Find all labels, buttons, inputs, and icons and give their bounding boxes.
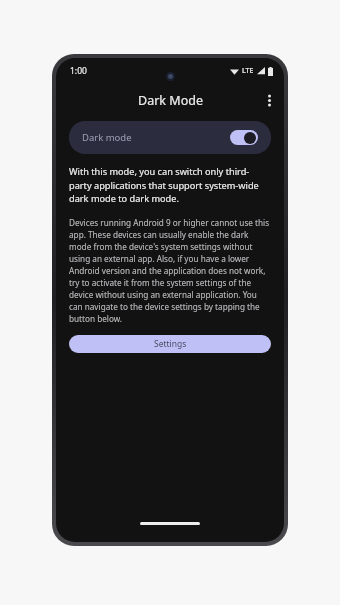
staticText: LTE [242,66,254,76]
button[interactable]: More options [254,85,284,115]
button[interactable]: Dark mode [69,121,271,154]
staticText: With this mode, you can switch only thir… [69,165,271,204]
staticText: Devices running Android 9 or higher cann… [69,217,271,324]
staticText: Dark Mode [138,92,203,109]
button[interactable]: Settings [69,335,271,353]
staticText: 1:00 [70,65,87,77]
staticText: Dark mode [82,131,230,144]
staticText: Settings [154,338,187,350]
